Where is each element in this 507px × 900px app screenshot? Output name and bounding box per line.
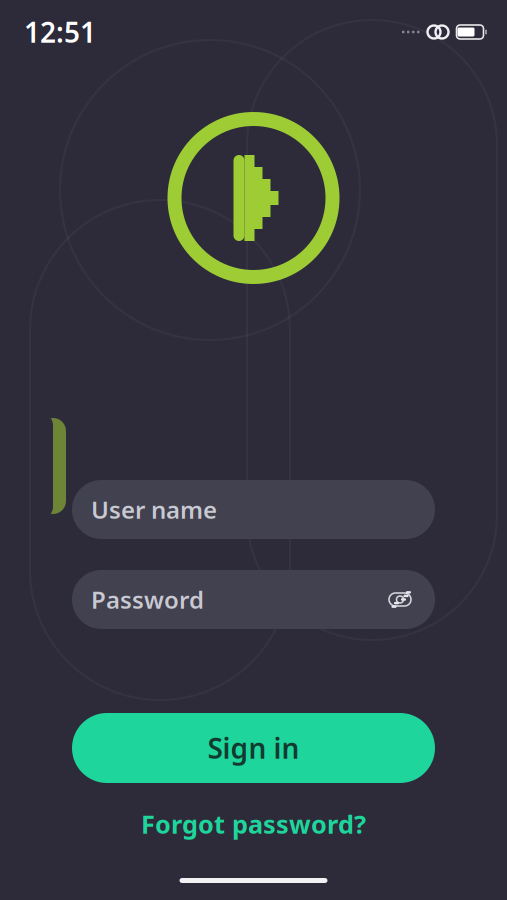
staticText: 12:51 bbox=[24, 13, 96, 51]
button[interactable]: User name bbox=[72, 480, 435, 539]
staticText: Sign in bbox=[207, 729, 299, 767]
button[interactable]: Forgot password? bbox=[121, 797, 386, 851]
staticText: Password bbox=[91, 584, 204, 615]
button[interactable]: Password bbox=[72, 570, 435, 629]
staticText: User name bbox=[91, 494, 217, 525]
button[interactable]: Sign in bbox=[72, 713, 435, 783]
staticText: Forgot password? bbox=[141, 807, 366, 841]
